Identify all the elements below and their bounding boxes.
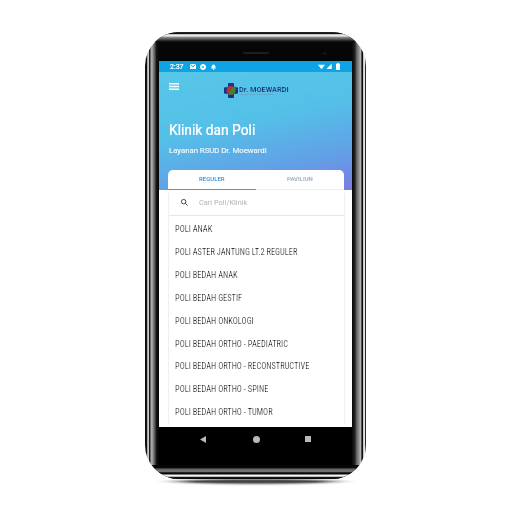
staticText: REGULER [199,175,225,182]
staticText: Layanan RSUD Dr. Moewardi [169,146,267,155]
button[interactable]: PAVILIUN [256,170,344,190]
button[interactable]: Recents [300,431,316,447]
button[interactable]: Back [195,431,211,447]
button[interactable]: REGULER [168,170,256,190]
button[interactable]: POLI BEDAH ORTHO - TUMOR [159,401,352,423]
staticText: 2:37 [170,63,184,71]
staticText: Cari Poli/Klinik [199,198,248,207]
staticText: POLI BEDAH ANAK [175,270,238,280]
button[interactable]: POLI BEDAH ORTHO - PAEDIATRIC [159,333,352,355]
button[interactable]: POLI BEDAH ONKOLOGI [159,310,352,332]
button[interactable]: POLI ANAK [159,218,352,240]
staticText: POLI BEDAH ORTHO - SPINE [175,384,269,394]
button[interactable]: Cari Poli/Klinik [159,190,352,215]
staticText: POLI BEDAH GESTIF [175,293,243,303]
button[interactable]: Home [248,431,264,447]
staticText: RUMAH SAKIT UMUM DAERAH [239,93,274,96]
staticText: POLI BEDAH ORTHO - PAEDIATRIC [175,339,288,349]
staticText: POLI ANAK [175,224,213,234]
staticText: Klinik dan Poli [169,122,256,138]
staticText: Dr. MOEWARDI [239,85,289,94]
button[interactable]: POLI BEDAH ANAK [159,264,352,286]
staticText: PAVILIUN [287,175,313,182]
button[interactable]: POLI BEDAH ORTHO - RECONSTRUCTIVE [159,355,352,377]
button[interactable]: POLI ASTER JANTUNG LT.2 REGULER [159,241,352,263]
staticText: POLI ASTER JANTUNG LT.2 REGULER [175,247,298,257]
button[interactable]: POLI BEDAH ORTHO - SPINE [159,378,352,400]
button[interactable]: POLI BEDAH GESTIF [159,287,352,309]
staticText: POLI BEDAH ONKOLOGI [175,316,254,326]
staticText: POLI BEDAH ORTHO - RECONSTRUCTIVE [175,361,310,371]
staticText: POLI BEDAH ORTHO - TUMOR [175,407,273,417]
button[interactable]: Menu [164,76,184,96]
